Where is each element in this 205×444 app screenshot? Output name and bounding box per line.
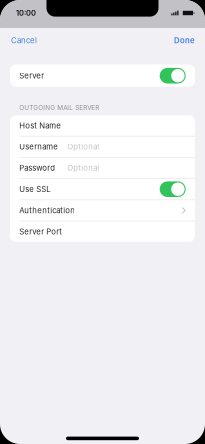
button[interactable]: Authentication [10, 200, 195, 221]
staticText: Password [19, 163, 55, 173]
button[interactable]: Cancel [0, 28, 45, 56]
staticText: Optional [67, 142, 99, 151]
staticText: Authentication [19, 206, 75, 215]
staticText: Host Name [19, 121, 61, 130]
staticText: Username [19, 142, 58, 151]
button[interactable]: Use SSL [10, 179, 195, 199]
button[interactable]: Done [166, 28, 205, 56]
staticText: 10:00 [16, 8, 36, 17]
staticText: Optional [67, 163, 99, 173]
staticText: Server Port [19, 227, 62, 236]
staticText: OUTGOING MAIL SERVER [19, 104, 99, 111]
staticText: Cancel [11, 36, 37, 45]
staticText: Done [174, 36, 195, 45]
staticText: Use SSL [19, 184, 50, 194]
staticText: Server [19, 71, 44, 80]
